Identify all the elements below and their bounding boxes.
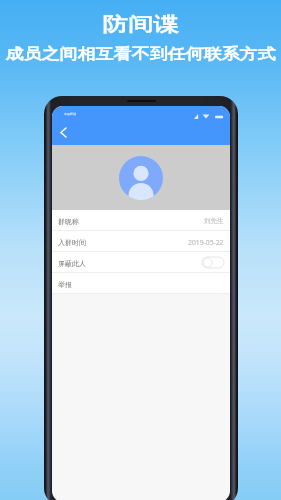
button[interactable]: 入群时间 (52, 231, 230, 251)
button[interactable]: 群昵称 (52, 210, 230, 230)
staticText: 群昵称 (58, 217, 79, 226)
button[interactable]: Back (54, 123, 72, 141)
button[interactable]: 屏蔽此人 (52, 252, 230, 272)
staticText: 入群时间 (58, 238, 86, 247)
button[interactable]: Toggle block (202, 257, 224, 268)
staticText: 中国移动 (64, 112, 76, 116)
button[interactable]: 举报 (52, 273, 230, 293)
staticText: 刘先生 (204, 217, 224, 225)
staticText: 屏蔽此人 (58, 259, 86, 268)
staticText: 防间谍 (102, 13, 179, 37)
staticText: 2019-05-22 (188, 238, 224, 247)
staticText: 举报 (58, 280, 72, 289)
staticText: 成员之间相互看不到任何联系方式 (5, 45, 275, 64)
